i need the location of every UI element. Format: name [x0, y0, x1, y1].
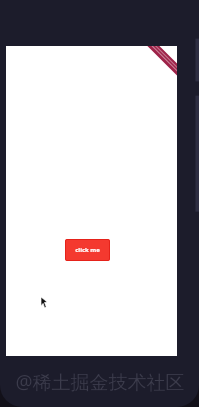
staticText: @稀土掘金技术社区 [15, 369, 185, 395]
staticText: click me [75, 246, 100, 254]
button[interactable]: click me [65, 239, 110, 261]
button[interactable]: Fork me on GitHub [137, 46, 177, 86]
